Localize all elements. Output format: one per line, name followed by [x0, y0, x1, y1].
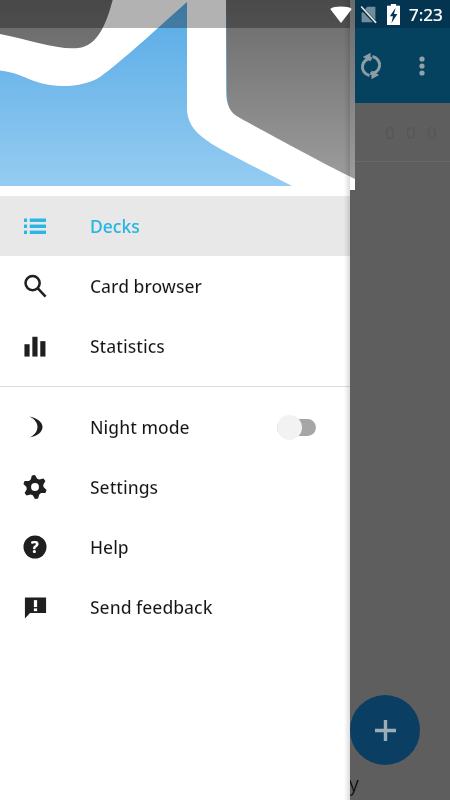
staticText: Statistics	[90, 334, 165, 358]
button[interactable]: Send feedback	[0, 577, 350, 637]
staticText: Settings	[90, 475, 159, 499]
staticText: Help	[90, 535, 129, 559]
button[interactable]: Night mode	[0, 397, 350, 457]
button[interactable]: Card browser	[0, 256, 350, 316]
staticText: ?	[31, 536, 39, 558]
staticText: Card browser	[90, 274, 202, 298]
button[interactable]: Add deck	[350, 695, 420, 765]
button[interactable]: Settings	[0, 457, 350, 517]
button[interactable]: Decks	[0, 196, 350, 256]
staticText: Decks	[90, 214, 140, 238]
button[interactable]: Statistics	[0, 316, 350, 376]
button[interactable]: Sync	[347, 42, 395, 90]
staticText: 7:23	[409, 3, 443, 26]
button[interactable]: More options	[398, 42, 446, 90]
staticText: Night mode	[90, 415, 190, 439]
staticText: Study	[306, 770, 360, 797]
staticText: Send feedback	[90, 595, 213, 619]
button[interactable]: ?	[0, 517, 350, 577]
